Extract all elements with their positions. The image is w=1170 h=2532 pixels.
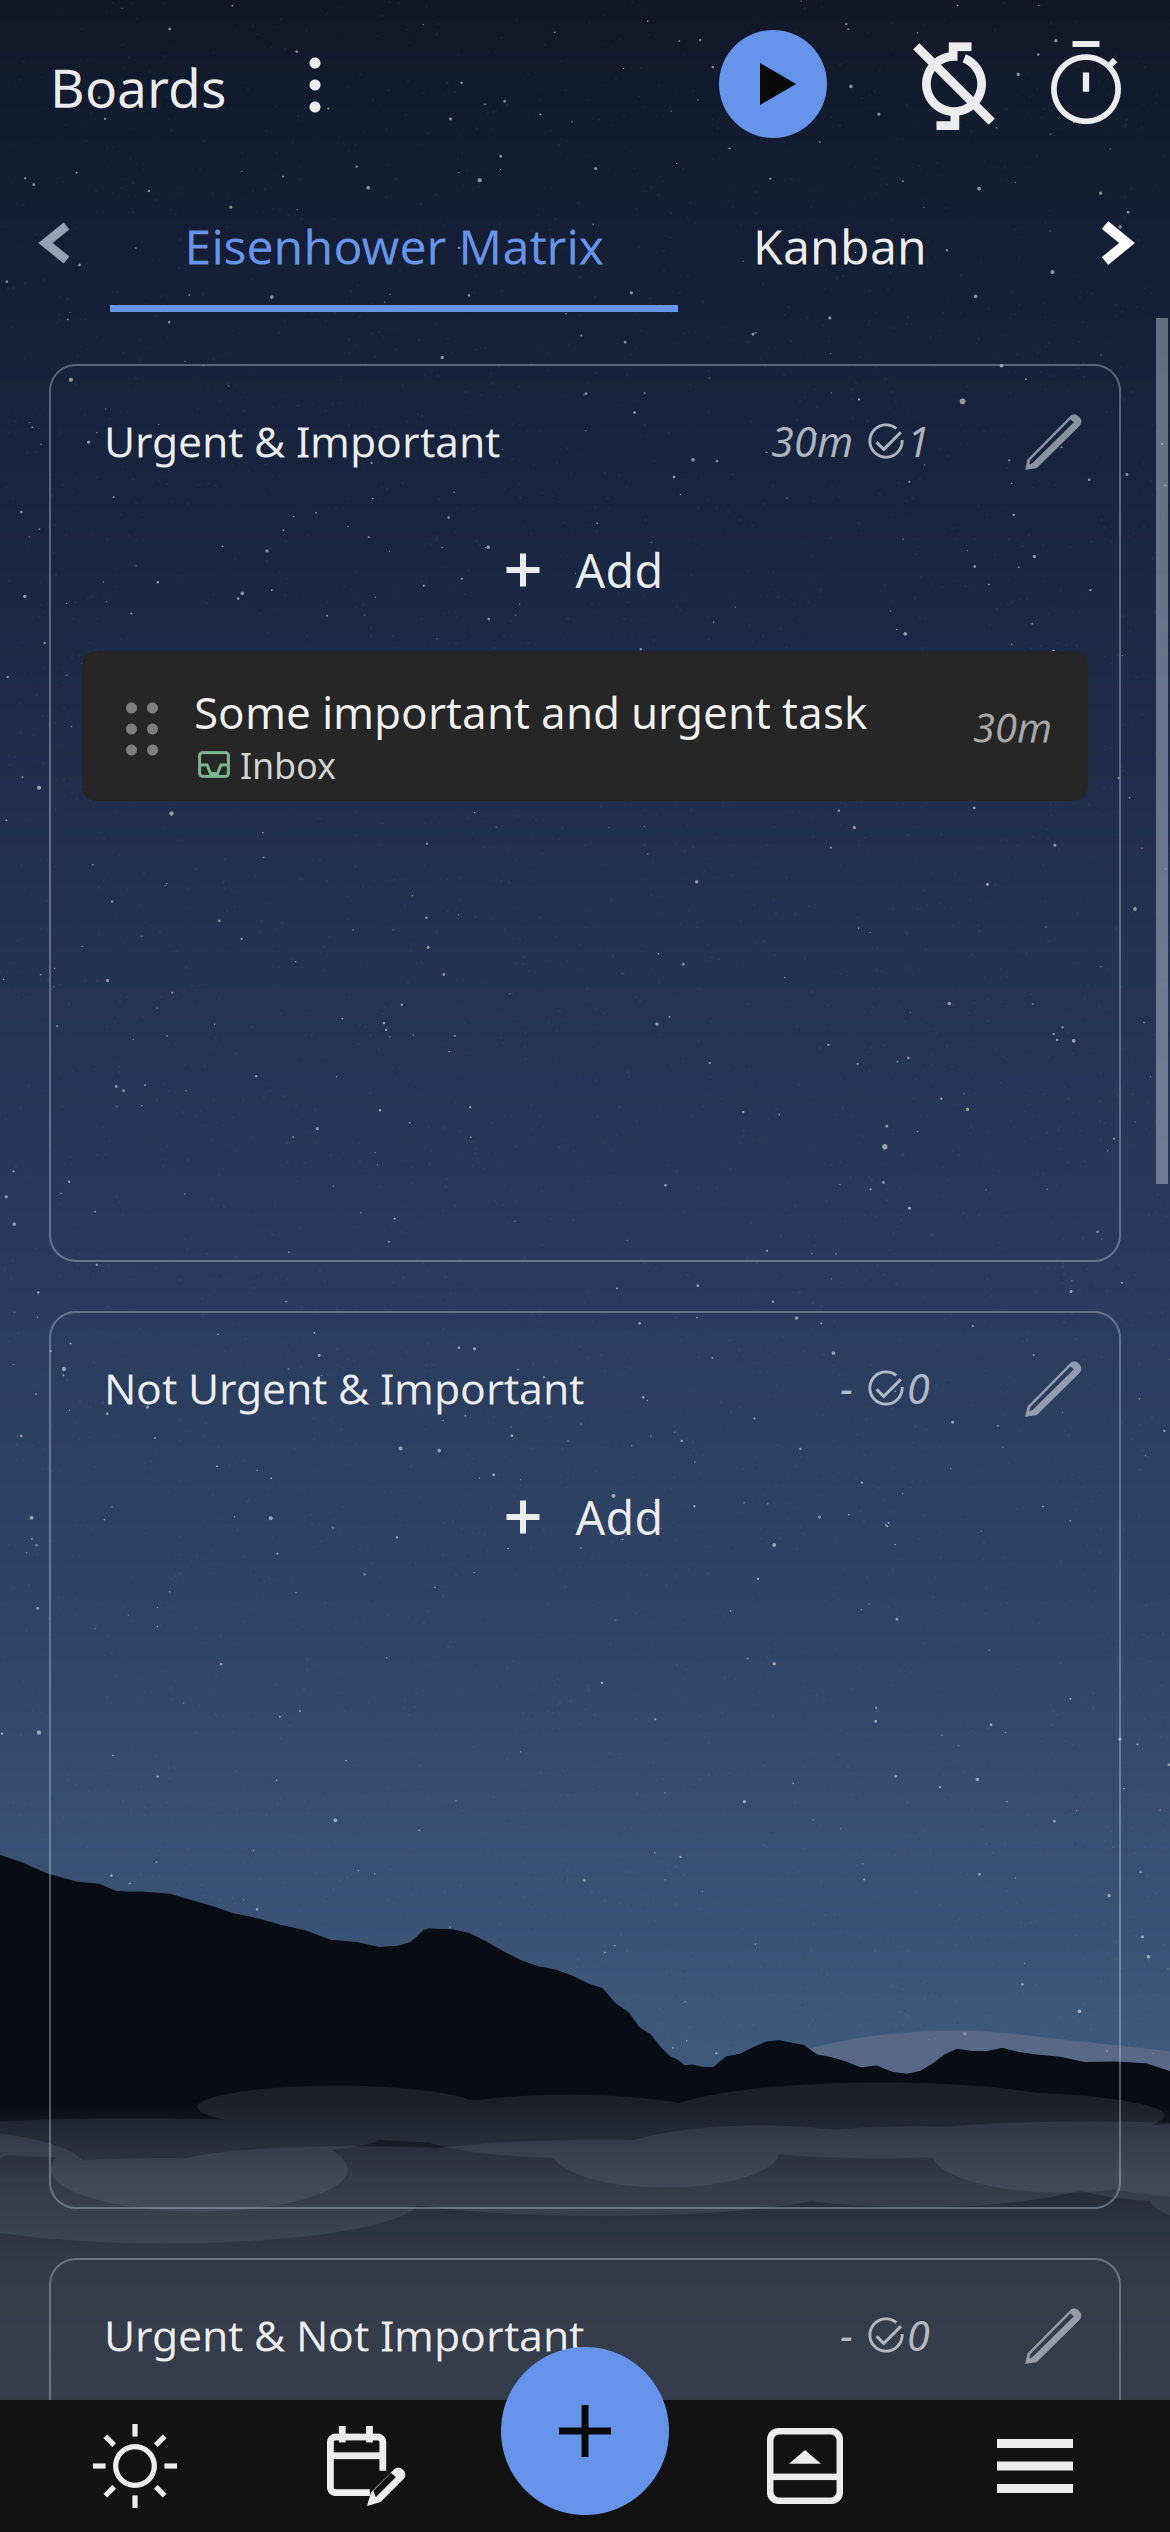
staticText: Eisenhower Matrix [184,214,603,278]
button[interactable]: Start timer [719,30,827,138]
button[interactable]: More options [272,30,358,140]
button[interactable]: Planner [250,2400,484,2532]
button[interactable]: Edit Not Urgent & Important [998,1344,1108,1434]
button[interactable]: Add [50,1462,1120,1572]
staticText: 0 [907,2308,930,2362]
button[interactable]: Boards [688,2400,922,2532]
staticText: Add [575,539,663,601]
button[interactable]: Previous board [6,193,106,293]
button[interactable]: Eisenhower Matrix [110,196,678,296]
button[interactable]: Edit Urgent & Important [998,397,1108,487]
button[interactable]: Add [50,515,1120,625]
staticText: - [840,2308,853,2362]
button[interactable]: Stopwatch [1026,24,1146,144]
staticText: Add [575,2433,663,2495]
staticText: 1 [907,414,930,468]
button[interactable]: Sync off [889,24,1019,144]
staticText: Add [575,1486,663,1548]
button[interactable]: Some important and urgent task [82,651,1088,801]
button[interactable]: Kanban [690,196,990,296]
button[interactable]: Today [18,2400,252,2532]
staticText: 0 [907,1361,930,1415]
staticText: Not Urgent & Important [104,1360,584,1416]
button[interactable]: Next board [1066,193,1166,293]
button[interactable]: Menu [918,2400,1152,2532]
button[interactable]: Add task [501,2347,669,2515]
staticText: Urgent & Not Important [104,2307,584,2363]
staticText: Urgent & Important [104,413,500,469]
staticText: Boards [50,52,227,122]
staticText: 30m [973,700,1052,753]
staticText: - [840,1361,853,1415]
button[interactable]: Edit Urgent & Not Important [998,2291,1108,2381]
button[interactable]: Boards [50,52,300,122]
staticText: 30m [771,414,853,468]
staticText: Some important and urgent task [194,683,867,741]
staticText: Inbox [240,741,336,789]
button[interactable]: Add [50,2409,1120,2519]
staticText: Kanban [753,214,927,278]
